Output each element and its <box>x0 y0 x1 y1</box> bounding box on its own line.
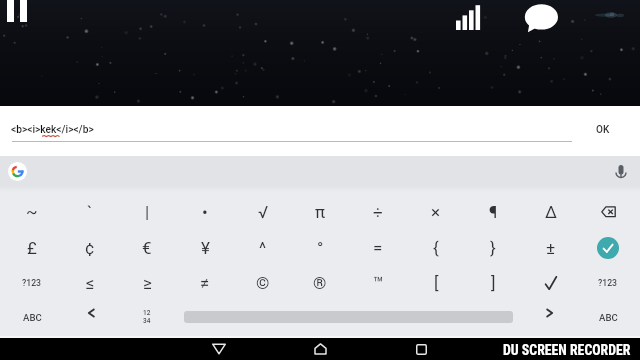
button[interactable]: Recent apps <box>405 338 437 360</box>
staticText: ¢ <box>85 238 95 258</box>
staticText: ® <box>313 273 327 293</box>
button[interactable]: Previous page <box>62 294 120 332</box>
button[interactable]: © <box>234 266 292 300</box>
button[interactable]: Numbers <box>118 298 176 336</box>
staticText: ABC <box>599 312 618 323</box>
button[interactable]: × <box>407 195 465 229</box>
button[interactable]: ≤ <box>61 266 119 300</box>
button[interactable]: ÷ <box>349 195 407 229</box>
button[interactable]: Letters <box>579 298 637 336</box>
button[interactable]: ± <box>522 231 580 265</box>
button[interactable]: ≥ <box>118 266 176 300</box>
staticText: ABC <box>23 312 42 323</box>
button[interactable]: Voice search <box>610 161 632 183</box>
button[interactable]: ~ <box>3 195 61 229</box>
staticText: £ <box>27 238 37 258</box>
staticText: ™ <box>373 273 384 293</box>
staticText: ÷ <box>373 202 383 222</box>
button[interactable]: ` <box>61 195 119 229</box>
staticText: ° <box>317 238 324 258</box>
staticText: € <box>142 238 152 258</box>
staticText: ≠ <box>200 273 210 293</box>
button[interactable]: Δ <box>522 195 580 229</box>
staticText: ~ <box>26 202 38 222</box>
staticText: 12 <box>143 309 151 317</box>
button[interactable]: | <box>118 195 176 229</box>
button[interactable]: OK <box>575 113 631 147</box>
button[interactable]: ^ <box>234 231 292 265</box>
button[interactable]: Letters <box>3 298 61 336</box>
button[interactable]: More symbols <box>579 266 637 300</box>
staticText: DU SCREEN RECORDER <box>503 342 631 358</box>
button[interactable]: Back <box>203 338 235 360</box>
staticText: [ <box>434 273 439 293</box>
staticText: • <box>202 202 208 222</box>
staticText: OK <box>596 124 610 136</box>
staticText: ] <box>491 273 496 293</box>
button[interactable]: ® <box>291 266 349 300</box>
staticText: Δ <box>545 202 557 222</box>
button[interactable]: Check mark <box>522 266 580 300</box>
staticText: = <box>373 238 383 258</box>
staticText: ?123 <box>598 278 618 288</box>
staticText: © <box>256 273 270 293</box>
staticText: × <box>431 202 441 222</box>
button[interactable]: ° <box>291 231 349 265</box>
button[interactable]: π <box>291 195 349 229</box>
button[interactable]: ¢ <box>61 231 119 265</box>
button[interactable]: Signal strength <box>454 3 484 35</box>
staticText: ^ <box>259 238 267 258</box>
button[interactable]: = <box>349 231 407 265</box>
button[interactable]: Chat <box>521 1 561 35</box>
button[interactable]: Symbols <box>3 266 61 300</box>
staticText: { <box>433 238 439 258</box>
staticText: ` <box>87 202 93 222</box>
button[interactable]: Next page <box>521 294 579 332</box>
button[interactable]: ¶ <box>464 195 522 229</box>
button[interactable]: £ <box>3 231 61 265</box>
staticText: ¥ <box>201 238 210 258</box>
button[interactable]: } <box>464 231 522 265</box>
button[interactable]: { <box>407 231 465 265</box>
button[interactable]: [ <box>407 266 465 300</box>
staticText: ≤ <box>86 273 95 293</box>
button[interactable]: Home <box>304 338 336 360</box>
staticText: 34 <box>143 317 151 325</box>
button[interactable]: Enter <box>579 231 637 265</box>
staticText: <b><i>kek</i></b> <box>11 124 94 136</box>
staticText: } <box>490 238 496 258</box>
staticText: ≥ <box>143 273 152 293</box>
button[interactable]: ] <box>464 266 522 300</box>
staticText: | <box>145 202 150 222</box>
button[interactable]: Pause <box>7 0 29 23</box>
button[interactable]: Backspace <box>579 195 637 229</box>
staticText: ± <box>546 238 556 258</box>
button[interactable]: ¥ <box>176 231 234 265</box>
button[interactable]: € <box>118 231 176 265</box>
button[interactable]: √ <box>234 195 292 229</box>
button[interactable]: ™ <box>349 266 407 300</box>
staticText: √ <box>258 202 269 222</box>
button[interactable]: Google search <box>8 162 27 181</box>
button[interactable]: ≠ <box>176 266 234 300</box>
button[interactable]: • <box>176 195 234 229</box>
staticText: π <box>315 202 326 222</box>
staticText: ¶ <box>489 202 498 222</box>
staticText: ?123 <box>22 278 42 288</box>
